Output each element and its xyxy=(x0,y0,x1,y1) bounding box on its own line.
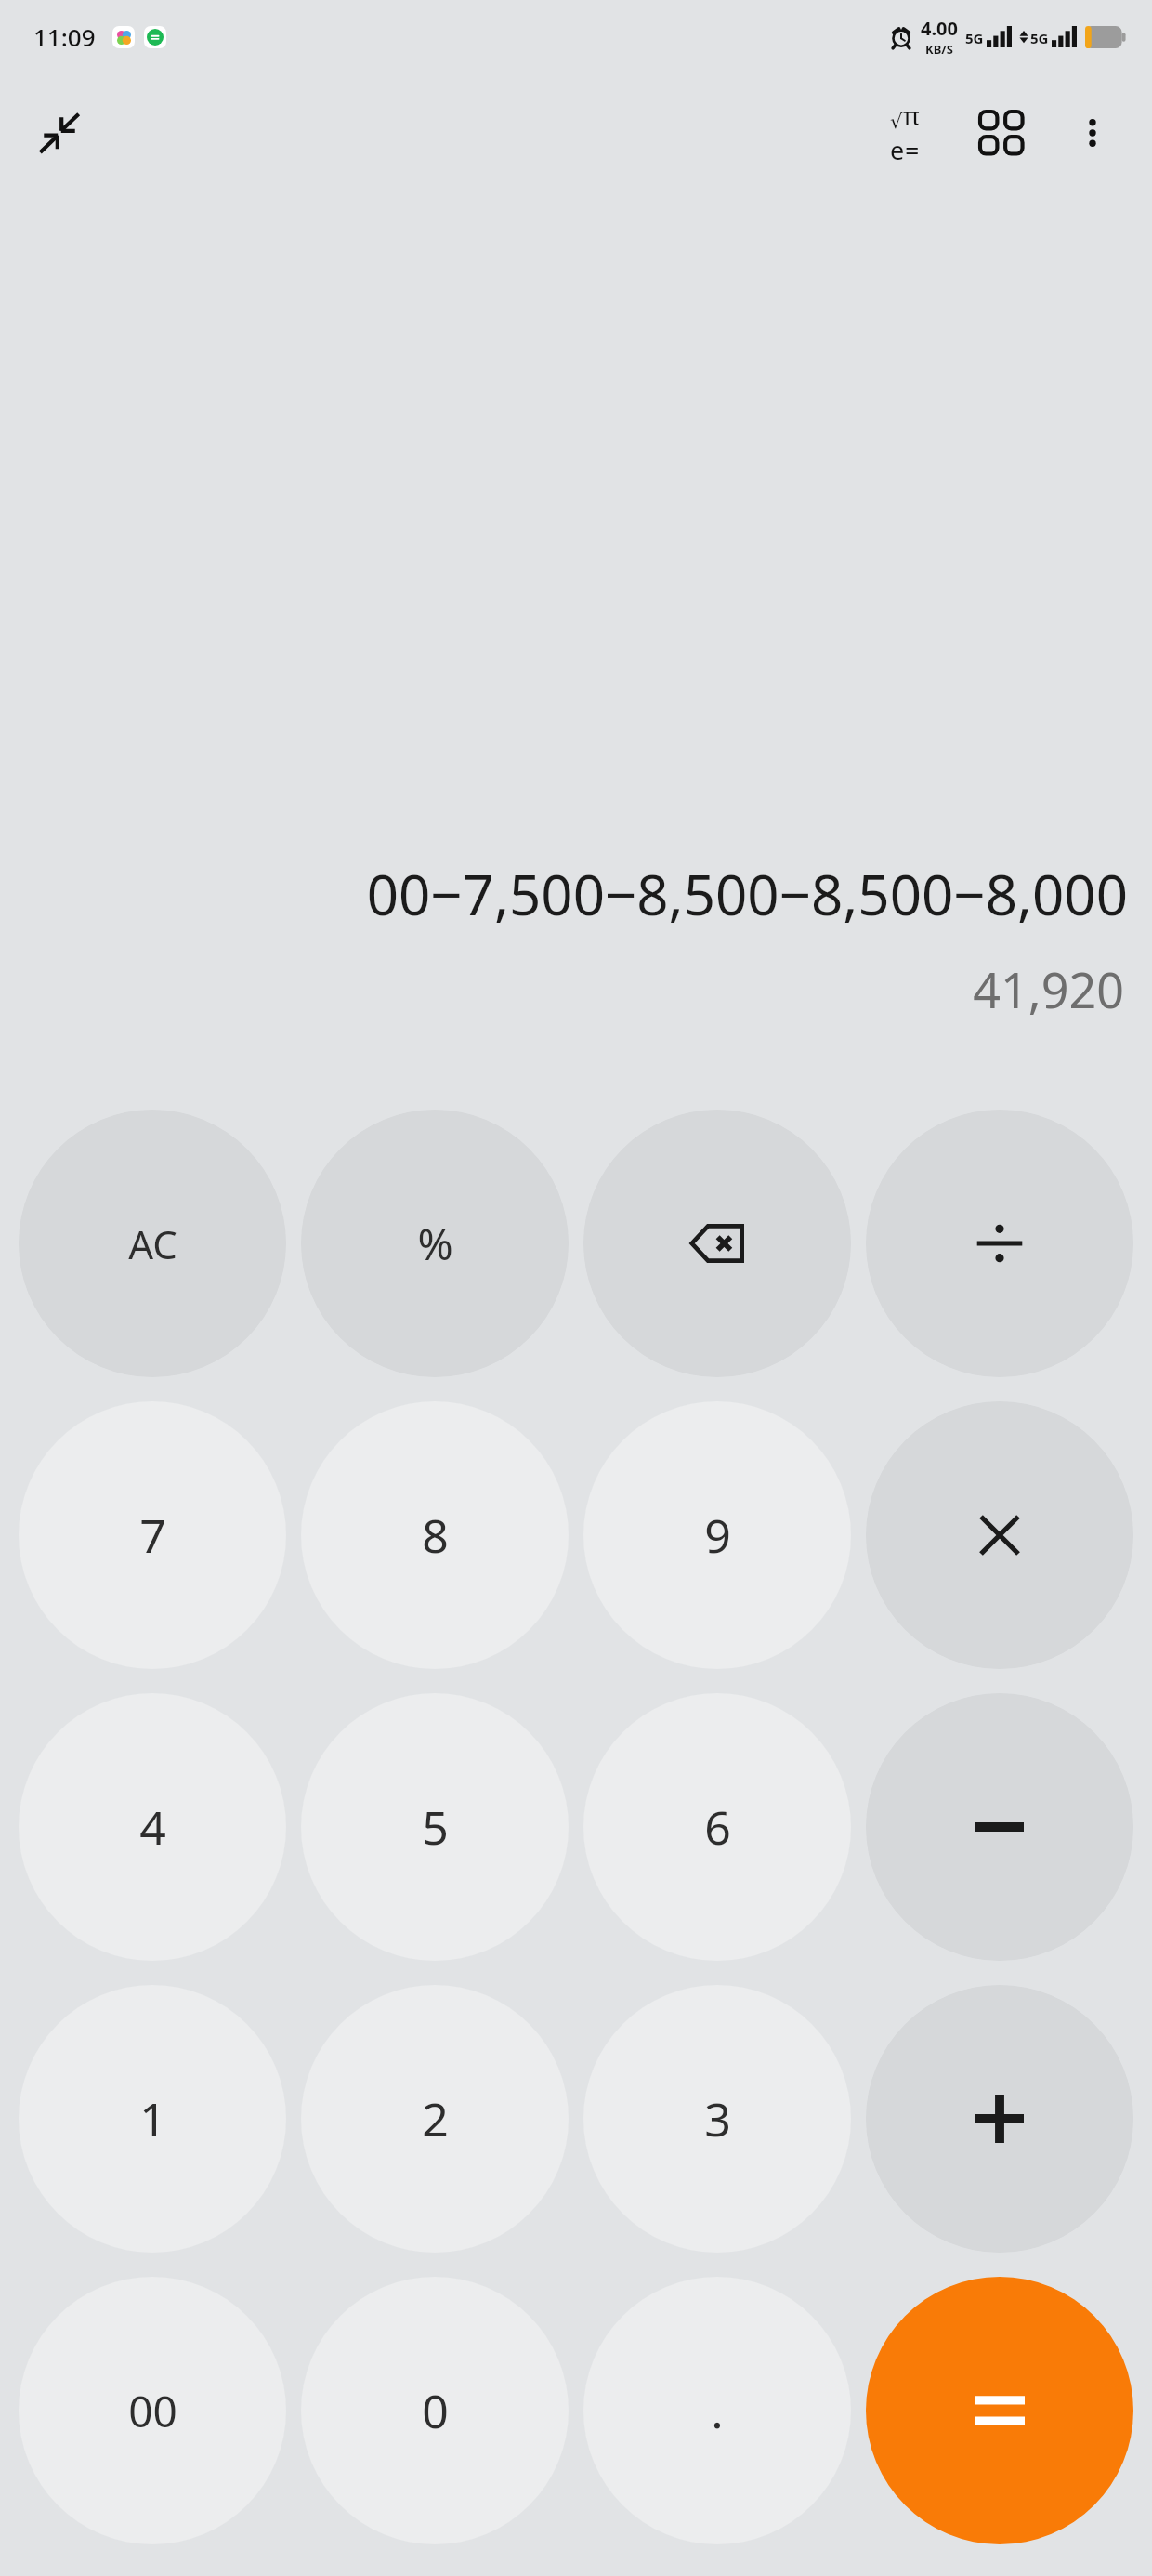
button[interactable]: 1 xyxy=(19,1985,286,2253)
staticText: 4 xyxy=(139,1795,166,1859)
button[interactable]: 7 xyxy=(19,1401,286,1669)
staticText: 9 xyxy=(704,1504,731,1567)
staticText: 00−7,500−8,500−8,500−8,000 xyxy=(366,856,1128,932)
button[interactable]: Scientific xyxy=(864,92,946,174)
button[interactable]: 6 xyxy=(583,1693,851,1961)
button[interactable]: 8 xyxy=(301,1401,569,1669)
button[interactable]: More options xyxy=(1052,92,1133,174)
button[interactable]: % xyxy=(301,1110,569,1377)
button[interactable]: 9 xyxy=(583,1401,851,1669)
staticText: √ xyxy=(890,111,903,133)
staticText: 00 xyxy=(128,2382,177,2440)
staticText: = xyxy=(905,133,920,167)
button[interactable]: Collapse xyxy=(24,98,95,168)
button[interactable]: History xyxy=(961,92,1042,174)
staticText: 6 xyxy=(704,1795,731,1859)
button[interactable]: 2 xyxy=(301,1985,569,2253)
staticText: 11:09 xyxy=(33,20,96,53)
staticText: 7 xyxy=(139,1504,166,1567)
button[interactable]: Plus xyxy=(866,1985,1133,2253)
staticText: e xyxy=(890,133,905,167)
button[interactable]: . xyxy=(583,2277,851,2544)
button[interactable]: 0 xyxy=(301,2277,569,2544)
button[interactable]: 4 xyxy=(19,1693,286,1961)
staticText: 2 xyxy=(422,2087,449,2150)
staticText: π xyxy=(903,99,920,133)
button[interactable]: Divide xyxy=(866,1110,1133,1377)
staticText: 5 xyxy=(422,1795,449,1859)
staticText: % xyxy=(417,1215,453,1273)
staticText: 1 xyxy=(139,2087,166,2150)
button[interactable]: Equals xyxy=(866,2277,1133,2544)
button[interactable]: Backspace xyxy=(583,1110,851,1377)
button[interactable]: 3 xyxy=(583,1985,851,2253)
button[interactable]: 00 xyxy=(19,2277,286,2544)
staticText: 5G xyxy=(965,29,984,47)
staticText: 4.00 xyxy=(921,16,958,41)
staticText: KB/S xyxy=(925,41,953,58)
staticText: AC xyxy=(128,1217,177,1270)
staticText: 41,920 xyxy=(973,956,1124,1022)
staticText: 0 xyxy=(422,2379,449,2442)
staticText: 5G xyxy=(1030,29,1049,47)
button[interactable]: 5 xyxy=(301,1693,569,1961)
button[interactable]: Minus xyxy=(866,1693,1133,1961)
button[interactable]: Multiply xyxy=(866,1401,1133,1669)
staticText: 3 xyxy=(704,2087,731,2150)
button[interactable]: AC xyxy=(19,1110,286,1377)
staticText: 8 xyxy=(422,1504,449,1567)
staticText: . xyxy=(711,2379,724,2442)
